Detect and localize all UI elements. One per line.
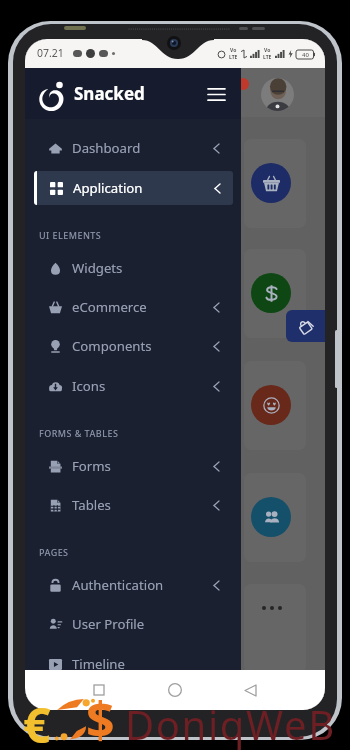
button[interactable] xyxy=(244,249,306,338)
staticText: Widgets xyxy=(72,259,123,277)
button[interactable]: Authentication xyxy=(25,568,241,602)
staticText: 40 xyxy=(302,51,309,59)
button[interactable]: Components xyxy=(25,329,241,363)
button[interactable]: Back xyxy=(232,670,268,710)
staticText: Timeline xyxy=(72,655,125,673)
staticText: FORMS & TABLES xyxy=(39,427,119,439)
staticText: LTE xyxy=(229,54,238,61)
staticText: UI ELEMENTS xyxy=(39,229,102,241)
button[interactable]: Forms xyxy=(25,449,241,483)
button[interactable]: Tables xyxy=(25,488,241,522)
button[interactable]: eCommerce xyxy=(25,290,241,324)
staticText: Components xyxy=(72,337,152,355)
button[interactable]: Recents xyxy=(81,670,117,710)
button[interactable]: User Profile xyxy=(25,607,241,641)
button[interactable] xyxy=(244,139,306,228)
button[interactable] xyxy=(244,361,306,450)
staticText: Icons xyxy=(72,377,106,395)
staticText: 07.21 xyxy=(37,46,64,60)
staticText: $ xyxy=(86,685,115,750)
button[interactable] xyxy=(244,584,306,673)
staticText: eCommerce xyxy=(72,298,147,316)
staticText: Dashboard xyxy=(72,139,141,157)
staticText: LTE xyxy=(263,54,272,61)
staticText: Snacked xyxy=(74,82,145,105)
staticText: Authentication xyxy=(72,576,164,594)
staticText: Vo xyxy=(230,47,237,54)
button[interactable]: Widgets xyxy=(25,251,241,285)
button[interactable]: Home xyxy=(157,670,193,710)
button[interactable]: Theme customizer xyxy=(286,310,325,342)
button[interactable]: Profile xyxy=(261,78,294,111)
button[interactable]: Timeline xyxy=(25,647,241,681)
staticText: Application xyxy=(73,179,143,197)
button[interactable]: Application xyxy=(34,171,233,205)
button[interactable] xyxy=(244,473,306,562)
staticText: Vo xyxy=(264,47,271,54)
button[interactable]: Menu xyxy=(198,76,234,112)
staticText: DoniqWeB xyxy=(125,697,336,750)
button[interactable]: Icons xyxy=(25,369,241,403)
staticText: € xyxy=(23,692,51,750)
staticText: Forms xyxy=(72,457,111,475)
staticText: User Profile xyxy=(72,615,145,633)
staticText: PAGES xyxy=(39,546,69,558)
staticText: Tables xyxy=(72,496,111,514)
button[interactable]: Dashboard xyxy=(25,131,241,165)
